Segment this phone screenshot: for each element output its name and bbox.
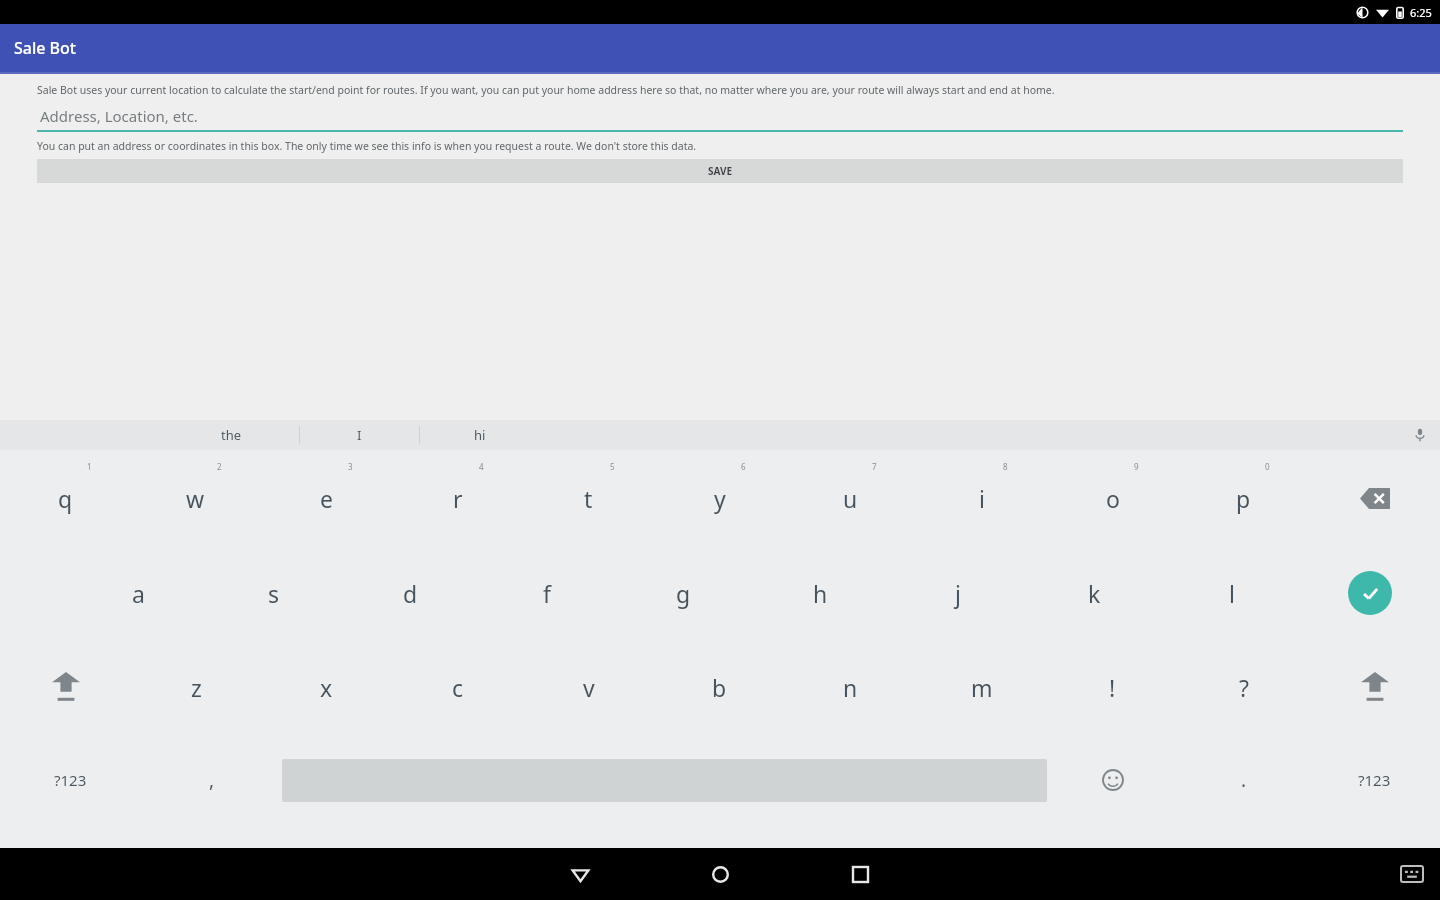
staticText: k bbox=[1088, 578, 1101, 609]
staticText: t bbox=[584, 483, 593, 514]
staticText: m bbox=[971, 672, 993, 703]
staticText: g bbox=[676, 578, 691, 609]
staticText: h bbox=[813, 578, 828, 609]
staticText: ?123 bbox=[54, 770, 87, 790]
button[interactable]: v bbox=[523, 640, 654, 734]
button[interactable]: ? bbox=[1178, 640, 1309, 734]
button[interactable]: , bbox=[141, 734, 282, 826]
button[interactable]: Sale Bot bbox=[0, 24, 1440, 72]
staticText: z bbox=[191, 672, 202, 703]
button[interactable]: 9 bbox=[1047, 450, 1178, 546]
button[interactable]: 4 bbox=[392, 450, 523, 546]
button[interactable]: m bbox=[916, 640, 1047, 734]
button[interactable]: hi bbox=[420, 420, 540, 450]
button[interactable]: 5 bbox=[523, 450, 654, 546]
staticText: o bbox=[1106, 483, 1120, 514]
staticText: y bbox=[714, 483, 726, 514]
staticText: 6 bbox=[741, 461, 746, 472]
staticText: s bbox=[268, 578, 280, 609]
button[interactable]: Shift bbox=[0, 640, 131, 734]
staticText: . bbox=[1241, 767, 1247, 793]
button[interactable]: x bbox=[261, 640, 392, 734]
staticText: You can put an address or coordinates in… bbox=[37, 139, 697, 153]
staticText: 1 bbox=[87, 461, 92, 472]
button[interactable]: Space bbox=[282, 734, 1047, 826]
button[interactable]: b bbox=[654, 640, 785, 734]
staticText: hi bbox=[474, 426, 486, 444]
button[interactable]: s bbox=[206, 546, 342, 640]
button[interactable]: j bbox=[889, 546, 1026, 640]
button[interactable]: Voice input bbox=[1400, 420, 1440, 450]
staticText: ! bbox=[1109, 672, 1116, 703]
staticText: c bbox=[452, 672, 464, 703]
staticText: v bbox=[583, 672, 595, 703]
staticText: 7 bbox=[872, 461, 877, 472]
button[interactable]: Enter bbox=[1300, 546, 1440, 640]
button[interactable]: Address, Location, etc. bbox=[37, 106, 1403, 132]
button[interactable]: a bbox=[70, 546, 206, 640]
staticText: SAVE bbox=[708, 164, 733, 178]
staticText: d bbox=[403, 578, 418, 609]
button[interactable]: 1 bbox=[0, 450, 130, 546]
button[interactable]: 6 bbox=[654, 450, 785, 546]
staticText: 3 bbox=[348, 461, 353, 472]
button[interactable]: Emoji bbox=[1047, 734, 1178, 826]
button[interactable]: k bbox=[1026, 546, 1163, 640]
staticText: I bbox=[357, 426, 362, 444]
staticText: Sale Bot bbox=[14, 37, 76, 59]
staticText: Sale Bot uses your current location to c… bbox=[37, 83, 1055, 97]
staticText: 5 bbox=[610, 461, 615, 472]
button[interactable]: Hide keyboard bbox=[510, 848, 650, 900]
staticText: w bbox=[186, 483, 205, 514]
staticText: q bbox=[58, 483, 73, 514]
button[interactable]: 3 bbox=[261, 450, 392, 546]
staticText: 4 bbox=[479, 461, 484, 472]
button[interactable]: Backspace bbox=[1309, 450, 1440, 546]
button[interactable]: f bbox=[478, 546, 615, 640]
staticText: a bbox=[132, 578, 145, 609]
staticText: e bbox=[320, 483, 333, 514]
button[interactable]: Switch keyboard bbox=[1384, 848, 1440, 900]
staticText: p bbox=[1236, 483, 1251, 514]
staticText: u bbox=[843, 483, 858, 514]
button[interactable]: g bbox=[615, 546, 752, 640]
button[interactable]: d bbox=[342, 546, 478, 640]
staticText: 0 bbox=[1265, 461, 1270, 472]
button[interactable]: the bbox=[163, 420, 299, 450]
button[interactable]: 7 bbox=[785, 450, 916, 546]
button[interactable]: ?123 bbox=[1309, 734, 1440, 826]
button[interactable]: I bbox=[300, 420, 419, 450]
button[interactable]: Home bbox=[650, 848, 790, 900]
button[interactable]: ?123 bbox=[0, 734, 141, 826]
staticText: ?123 bbox=[1358, 770, 1391, 790]
staticText: ? bbox=[1239, 672, 1249, 703]
staticText: r bbox=[453, 483, 463, 514]
staticText: x bbox=[320, 672, 333, 703]
staticText: n bbox=[843, 672, 858, 703]
staticText: 9 bbox=[1134, 461, 1139, 472]
button[interactable]: SAVE bbox=[37, 159, 1403, 183]
staticText: the bbox=[221, 426, 242, 444]
button[interactable]: 8 bbox=[916, 450, 1047, 546]
staticText: i bbox=[979, 483, 985, 514]
button[interactable]: 2 bbox=[130, 450, 261, 546]
button[interactable]: Shift bbox=[1309, 640, 1440, 734]
button[interactable]: z bbox=[131, 640, 261, 734]
staticText: b bbox=[712, 672, 727, 703]
button[interactable]: n bbox=[785, 640, 916, 734]
staticText: 2 bbox=[217, 461, 222, 472]
staticText: j bbox=[955, 578, 961, 609]
staticText: Address, Location, etc. bbox=[40, 106, 198, 126]
button[interactable]: l bbox=[1163, 546, 1300, 640]
button[interactable]: h bbox=[752, 546, 889, 640]
staticText: l bbox=[1229, 578, 1235, 609]
button[interactable]: Recent apps bbox=[790, 848, 930, 900]
button[interactable]: c bbox=[392, 640, 523, 734]
button[interactable]: 0 bbox=[1178, 450, 1309, 546]
staticText: 6:25 bbox=[1410, 5, 1432, 20]
staticText: f bbox=[543, 578, 551, 609]
staticText: , bbox=[209, 767, 215, 793]
button[interactable]: ! bbox=[1047, 640, 1178, 734]
staticText: 8 bbox=[1003, 461, 1008, 472]
